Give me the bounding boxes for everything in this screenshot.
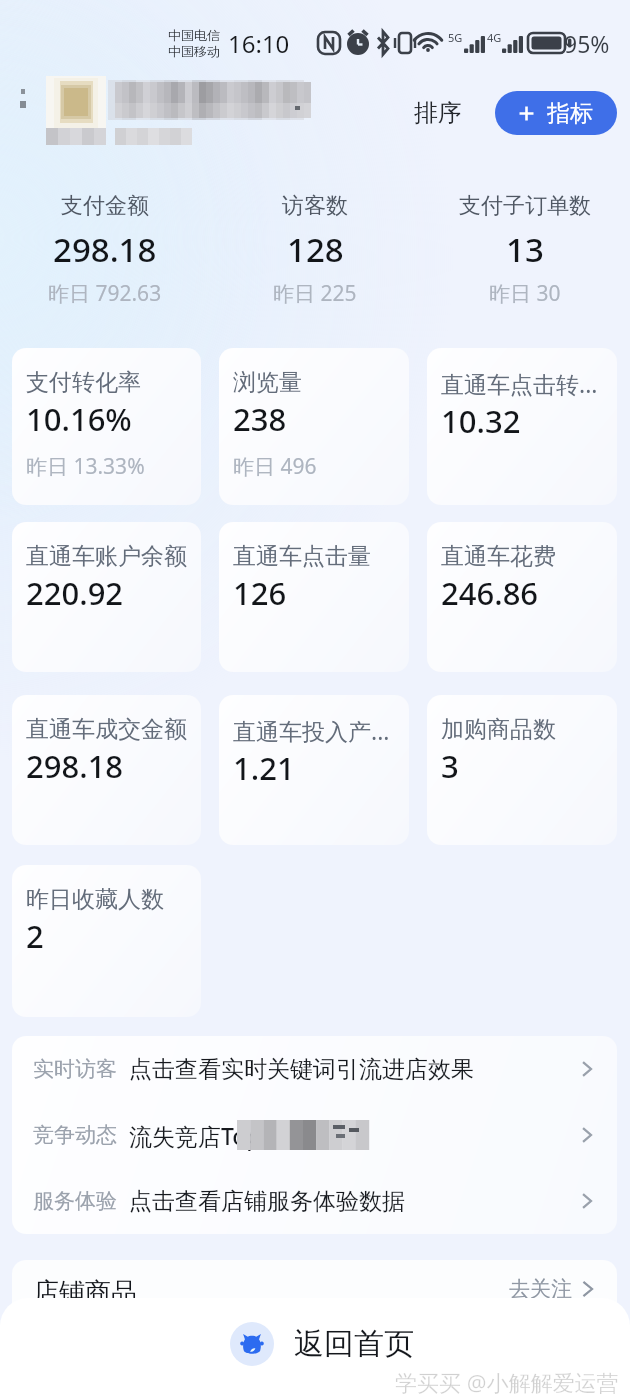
staticText: 加购商品数 bbox=[441, 715, 556, 744]
staticText: 1.21 bbox=[233, 747, 295, 789]
button[interactable]: 加购商品数 bbox=[427, 695, 617, 845]
other: 查看详情 bbox=[578, 1126, 596, 1144]
other: 去关注 bbox=[578, 1280, 596, 1294]
other: 查看详情 bbox=[578, 1060, 596, 1078]
staticText: 服务体验 bbox=[33, 1188, 117, 1214]
staticText: 10.16% bbox=[26, 398, 132, 440]
staticText: 去关注 bbox=[509, 1276, 572, 1302]
staticText: 学买买 @小解解爱运营 bbox=[395, 1367, 619, 1397]
staticText: 298.18 bbox=[26, 745, 124, 787]
staticText: 支付金额 bbox=[61, 192, 149, 220]
button[interactable]: 返回首页 bbox=[0, 1298, 630, 1400]
staticText: 5G bbox=[448, 30, 463, 45]
button[interactable]: 直通车投入产... bbox=[219, 695, 409, 845]
staticText: 昨日 225 bbox=[273, 279, 357, 308]
staticText: 直通车点击量 bbox=[233, 542, 371, 571]
button[interactable]: 实时访客 bbox=[12, 1036, 617, 1102]
staticText: 128 bbox=[287, 227, 344, 272]
staticText: 昨日收藏人数 bbox=[26, 885, 164, 914]
button[interactable]: 支付转化率 bbox=[12, 348, 201, 505]
button[interactable]: 昨日收藏人数 bbox=[12, 865, 201, 1017]
staticText: 支付转化率 bbox=[26, 368, 141, 397]
staticText: 指标 bbox=[547, 99, 593, 128]
staticText: 竞争动态 bbox=[33, 1122, 117, 1148]
staticText: 支付子订单数 bbox=[459, 192, 591, 220]
button[interactable]: 直通车账户余额 bbox=[12, 522, 201, 672]
button[interactable]: 支付金额 bbox=[0, 192, 210, 308]
staticText: 店铺商品 bbox=[33, 1276, 137, 1309]
staticText: 126 bbox=[233, 572, 287, 614]
staticText: 中国移动 bbox=[168, 43, 220, 59]
button[interactable]: 浏览量 bbox=[219, 348, 409, 505]
staticText: 返回首页 bbox=[294, 1325, 414, 1363]
staticText: 实时访客 bbox=[33, 1056, 117, 1082]
staticText: 220.92 bbox=[26, 572, 124, 614]
button[interactable]: 支付子订单数 bbox=[420, 192, 630, 308]
staticText: 浏览量 bbox=[233, 368, 302, 397]
staticText: 访客数 bbox=[282, 192, 348, 220]
staticText: 昨日 30 bbox=[489, 279, 561, 308]
staticText: 排序 bbox=[414, 98, 462, 128]
staticText: 直通车投入产... bbox=[233, 715, 390, 746]
staticText: 昨日 496 bbox=[233, 452, 317, 481]
staticText: 4G bbox=[487, 30, 502, 45]
staticText: 点击查看实时关键词引流进店效果 bbox=[129, 1055, 474, 1084]
button[interactable]: 直通车花费 bbox=[427, 522, 617, 672]
button[interactable]: 直通车成交金额 bbox=[12, 695, 201, 845]
button[interactable]: 添加指标 bbox=[495, 91, 617, 135]
button[interactable]: 直通车点击量 bbox=[219, 522, 409, 672]
staticText: 298.18 bbox=[53, 227, 157, 272]
button[interactable]: 直通车点击转... bbox=[427, 348, 617, 505]
button[interactable]: 店铺商品 bbox=[12, 1260, 617, 1309]
staticText: 16:10 bbox=[228, 27, 290, 60]
staticText: 直通车花费 bbox=[441, 542, 556, 571]
staticText: 10.32 bbox=[441, 400, 521, 442]
staticText: 直通车账户余额 bbox=[26, 542, 187, 571]
staticText: 流失竞店Top bbox=[129, 1120, 261, 1151]
staticText: 直通车成交金额 bbox=[26, 715, 187, 744]
other: 查看详情 bbox=[578, 1192, 596, 1210]
staticText: 中国电信 bbox=[168, 27, 220, 43]
staticText: 3 bbox=[441, 745, 459, 787]
staticText: 直通车点击转... bbox=[441, 368, 598, 399]
staticText: 95% bbox=[564, 28, 610, 59]
button[interactable]: 竞争动态 bbox=[12, 1102, 617, 1168]
button[interactable]: 服务体验 bbox=[12, 1168, 617, 1234]
staticText: 昨日 13.33% bbox=[26, 452, 145, 481]
staticText: 2 bbox=[26, 915, 44, 957]
staticText: 昨日 792.63 bbox=[48, 279, 162, 308]
staticText: 13 bbox=[506, 227, 544, 272]
staticText: 246.86 bbox=[441, 572, 539, 614]
button[interactable]: 排序 bbox=[404, 90, 472, 136]
staticText: 点击查看店铺服务体验数据 bbox=[129, 1187, 405, 1216]
button[interactable]: 访客数 bbox=[210, 192, 420, 308]
staticText: 238 bbox=[233, 398, 287, 440]
